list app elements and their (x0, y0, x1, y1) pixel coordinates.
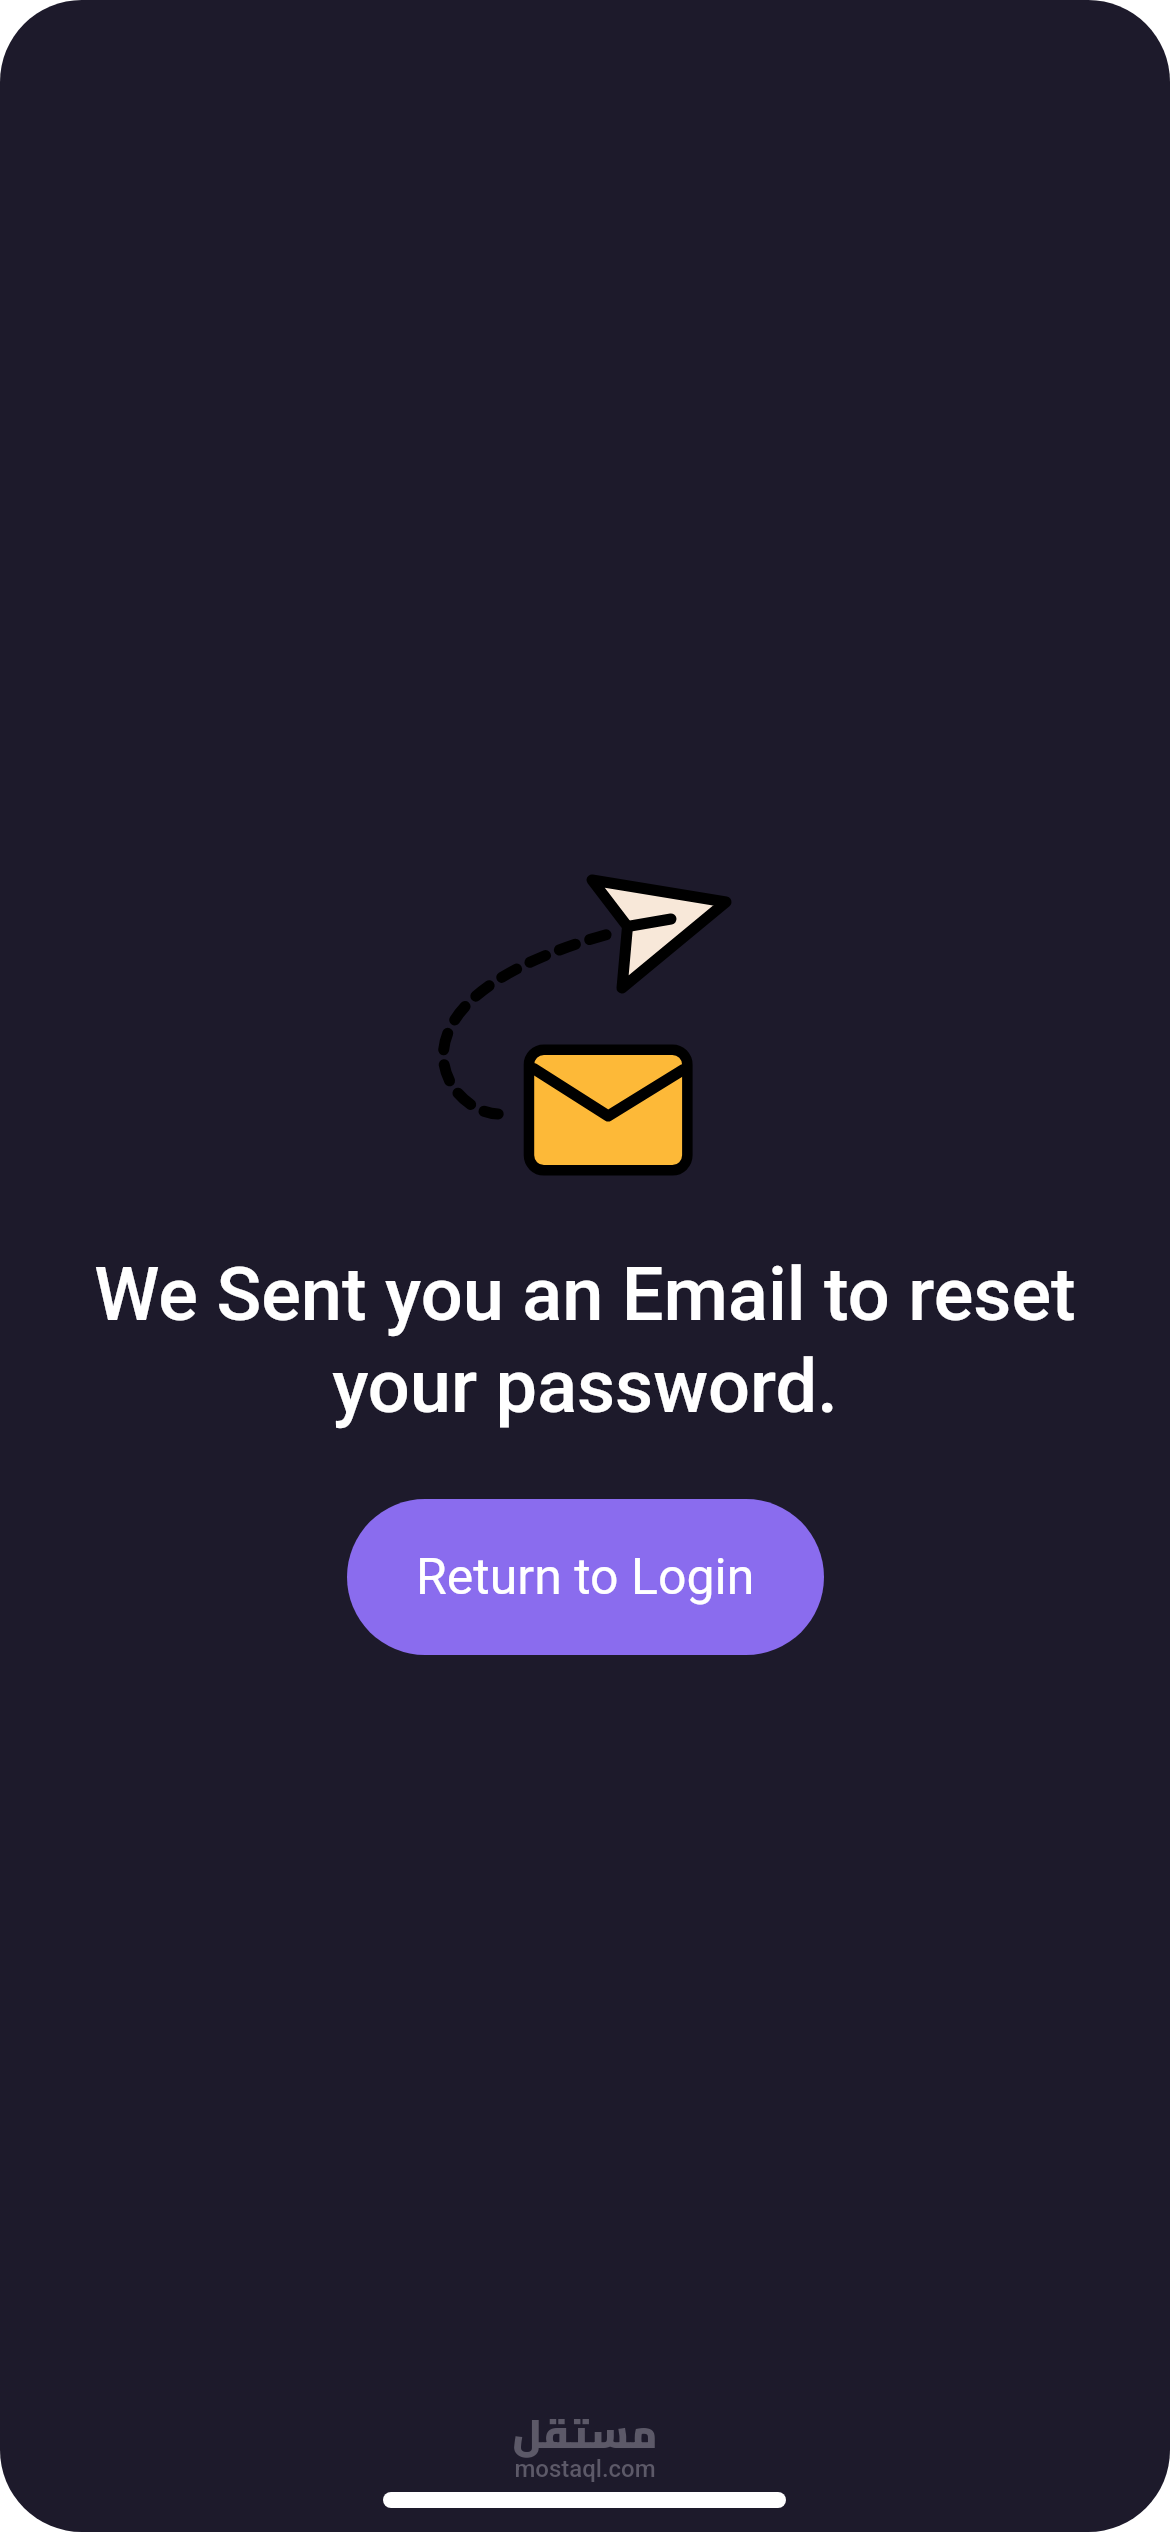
other: Email sent illustration (0, 0, 1170, 2532)
button[interactable]: Return to Login (347, 1499, 824, 1655)
staticText: Return to Login (416, 1548, 755, 1607)
staticText: مستقل (0, 2396, 1170, 2471)
staticText: mostaql.com (0, 2455, 1170, 2483)
staticText: We Sent you an Email to reset your passw… (0, 1251, 1170, 1430)
